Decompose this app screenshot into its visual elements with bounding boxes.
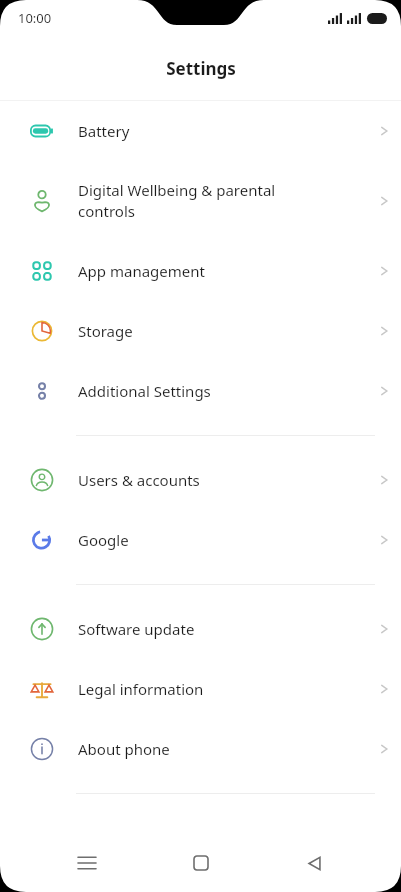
staticText: Users & accounts [78, 470, 355, 490]
button[interactable]: Users & accounts [0, 450, 401, 510]
staticText: 10:00 [18, 9, 52, 27]
button[interactable]: Digital Wellbeing & parental controls [0, 161, 401, 241]
button[interactable]: About phone [0, 719, 401, 779]
button[interactable]: Recent apps [60, 836, 114, 890]
button[interactable]: Google [0, 510, 401, 570]
staticText: Legal information [78, 679, 355, 699]
staticText: App management [78, 261, 355, 281]
button[interactable]: Storage [0, 301, 401, 361]
staticText: Google [78, 530, 355, 550]
button[interactable]: App management [0, 241, 401, 301]
button[interactable]: Software update [0, 599, 401, 659]
staticText: Battery [78, 121, 355, 141]
button[interactable]: Home [174, 836, 228, 890]
staticText: Storage [78, 321, 355, 341]
staticText: Software update [78, 619, 355, 639]
staticText: About phone [78, 739, 355, 759]
button[interactable]: Battery [0, 101, 401, 161]
staticText: Additional Settings [78, 381, 355, 401]
staticText: Settings [166, 57, 236, 80]
staticText: Digital Wellbeing & parental controls [78, 180, 355, 222]
button[interactable]: Legal information [0, 659, 401, 719]
button[interactable]: Back [287, 836, 341, 890]
button[interactable]: Additional Settings [0, 361, 401, 421]
